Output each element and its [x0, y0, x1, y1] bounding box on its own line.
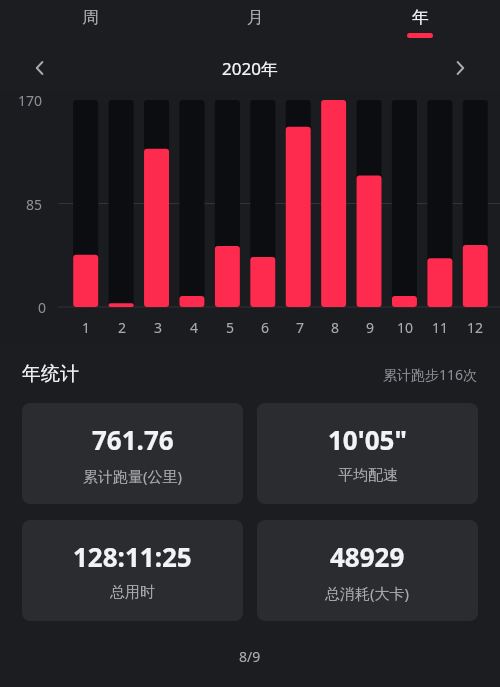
staticText: 月	[247, 7, 264, 28]
staticText: 8	[331, 318, 340, 337]
staticText: 85	[26, 195, 43, 214]
button[interactable]: 10'05"	[257, 403, 478, 504]
staticText: 总用时	[110, 583, 155, 602]
button[interactable]: 761.76	[22, 403, 243, 504]
button[interactable]: 年	[345, 0, 495, 46]
button[interactable]: 128:11:25	[22, 520, 243, 621]
staticText: 761.76	[92, 422, 174, 457]
staticText: 累计跑量(公里)	[83, 466, 183, 486]
staticText: 平均配速	[338, 466, 398, 485]
staticText: 7	[296, 318, 305, 337]
staticText: 4	[190, 318, 199, 337]
button[interactable]: 48929	[257, 520, 478, 621]
staticText: 累计跑步116次	[383, 365, 478, 384]
staticText: 1	[82, 318, 91, 337]
staticText: 年统计	[22, 362, 79, 386]
button[interactable]: Previous year	[22, 50, 58, 86]
button[interactable]: Next year	[442, 50, 478, 86]
staticText: 0	[38, 298, 47, 317]
staticText: 9	[366, 318, 375, 337]
staticText: 周	[82, 7, 99, 28]
staticText: 11	[432, 318, 449, 337]
staticText: 10	[397, 318, 414, 337]
staticText: 10'05"	[328, 422, 407, 457]
staticText: 5	[226, 318, 235, 337]
staticText: 年	[412, 7, 429, 28]
staticText: 6	[261, 318, 270, 337]
staticText: 2	[118, 318, 127, 337]
button[interactable]: 月	[180, 0, 330, 46]
staticText: 48929	[330, 539, 405, 574]
button[interactable]: 周	[15, 0, 165, 46]
staticText: 总消耗(大卡)	[325, 583, 410, 603]
staticText: 170	[18, 91, 43, 110]
staticText: 2020年	[222, 57, 278, 80]
staticText: 8/9	[239, 647, 261, 666]
staticText: 128:11:25	[73, 539, 192, 574]
staticText: 12	[467, 318, 484, 337]
staticText: 3	[154, 318, 163, 337]
